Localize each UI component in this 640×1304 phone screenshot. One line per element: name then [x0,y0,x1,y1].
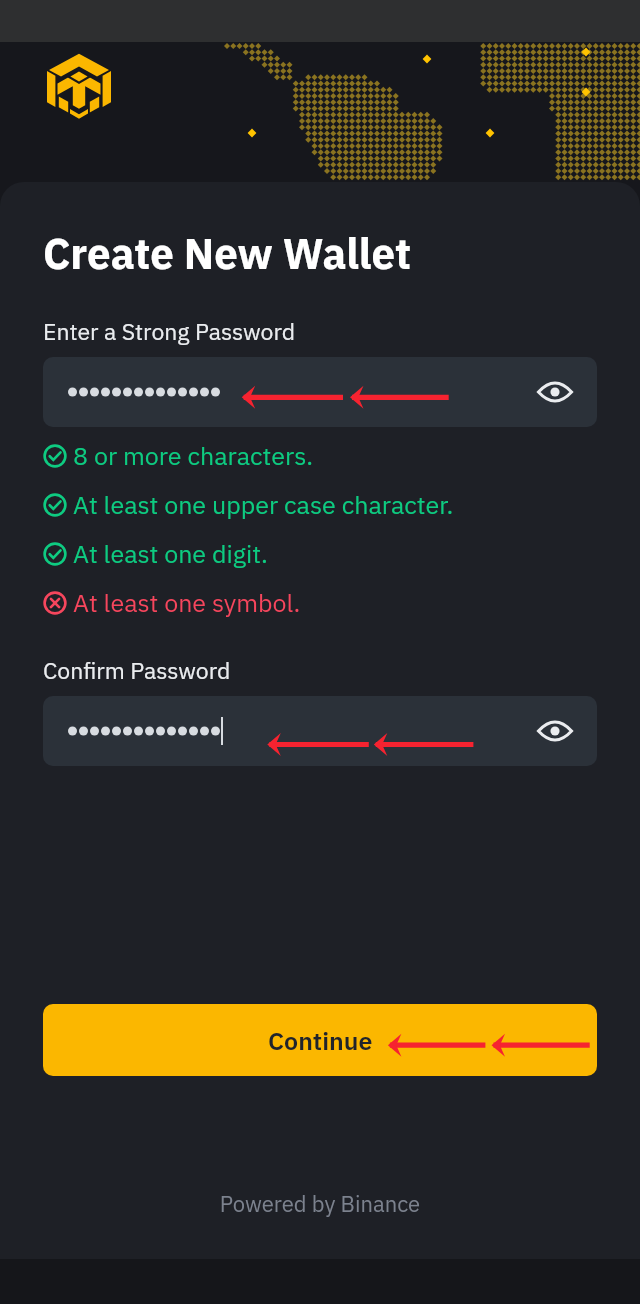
button[interactable]: Continue [43,1004,597,1076]
button[interactable]: At least one upper case character. [43,480,597,529]
staticText: 8 or more characters. [73,439,314,472]
button[interactable]: At least one symbol. [43,578,597,627]
button[interactable]: At least one digit. [43,529,597,578]
staticText: Enter a Strong Password [43,316,296,346]
staticText: At least one digit. [73,537,268,570]
staticText: At least one symbol. [73,586,301,619]
other: BNB Chain [46,52,112,118]
staticText: Create New Wallet [43,226,412,281]
staticText: At least one upper case character. [73,488,454,521]
button[interactable]: Show password [533,709,577,753]
button[interactable]: Show password [533,370,577,414]
staticText: Continue [268,1024,373,1057]
staticText: Confirm Password [43,655,231,685]
staticText: Powered by Binance [43,1189,597,1218]
button[interactable]: Show password [43,357,597,427]
button[interactable]: 8 or more characters. [43,431,597,480]
button[interactable]: Show password [43,696,597,766]
